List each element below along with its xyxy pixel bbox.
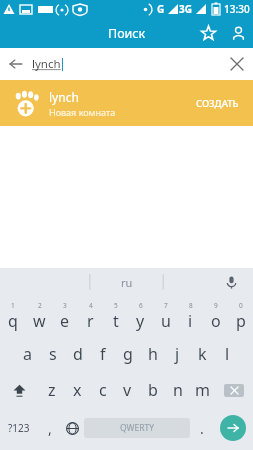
staticText: Новая комната <box>49 106 116 118</box>
button[interactable]: l <box>215 336 240 372</box>
button[interactable]: b <box>140 372 165 408</box>
staticText: d <box>73 343 83 365</box>
button[interactable]: 4 <box>78 296 103 336</box>
staticText: t <box>113 310 119 332</box>
staticText: СОЗДАТЬ <box>196 97 239 110</box>
button[interactable]: 3 <box>52 296 78 336</box>
staticText: v <box>123 379 132 401</box>
staticText: y <box>136 310 145 332</box>
staticText: h <box>148 343 158 365</box>
staticText: q <box>8 310 18 332</box>
staticText: lynch <box>32 56 61 72</box>
staticText: p <box>236 310 246 332</box>
button[interactable]: 5 <box>103 296 128 336</box>
staticText: 3 <box>63 301 67 310</box>
staticText: s <box>49 343 57 365</box>
button[interactable]: 0 <box>228 296 253 336</box>
button[interactable]: m <box>190 372 215 408</box>
staticText: e <box>60 310 70 332</box>
staticText: i <box>188 310 193 332</box>
staticText: ?123 <box>8 421 30 435</box>
button[interactable]: s <box>40 336 65 372</box>
button[interactable]: Account <box>223 18 253 48</box>
staticText: b <box>148 379 158 401</box>
staticText: f <box>100 343 106 365</box>
staticText: k <box>198 343 207 365</box>
button[interactable]: v <box>115 372 140 408</box>
button[interactable]: Change language <box>61 408 84 448</box>
button[interactable]: . <box>190 408 213 448</box>
staticText: QWERTY <box>120 422 155 434</box>
staticText: m <box>195 379 210 401</box>
staticText: 6 <box>139 301 143 310</box>
button[interactable]: k <box>190 336 215 372</box>
button[interactable]: 7 <box>153 296 178 336</box>
staticText: n <box>173 379 183 401</box>
button[interactable]: x <box>65 372 90 408</box>
button[interactable]: Shift <box>0 372 39 408</box>
button[interactable]: СОЗДАТЬ <box>182 89 253 118</box>
button[interactable]: z <box>39 372 65 408</box>
staticText: r <box>87 310 94 332</box>
staticText: 13:30 <box>224 2 250 16</box>
button[interactable]: g <box>115 336 140 372</box>
staticText: 4 <box>89 301 93 310</box>
button[interactable]: , <box>38 408 61 448</box>
button[interactable]: h <box>140 336 165 372</box>
staticText: Поиск <box>108 25 146 42</box>
staticText: x <box>73 379 82 401</box>
staticText: g <box>123 343 133 365</box>
staticText: ru <box>121 275 133 290</box>
staticText: 0 <box>239 301 243 310</box>
button[interactable]: lynch <box>0 80 253 126</box>
staticText: G <box>157 2 165 16</box>
button[interactable]: c <box>90 372 115 408</box>
button[interactable]: 9 <box>203 296 228 336</box>
staticText: 7 <box>164 301 168 310</box>
button[interactable]: Enter <box>213 408 253 448</box>
staticText: 8 <box>189 301 193 310</box>
button[interactable]: Backspace <box>215 372 253 408</box>
staticText: lynch <box>49 89 79 105</box>
button[interactable]: QWERTY <box>84 418 190 438</box>
staticText: o <box>211 310 221 332</box>
staticText: w <box>33 310 46 332</box>
staticText: 5 <box>114 301 118 310</box>
staticText: z <box>48 379 56 401</box>
button[interactable]: d <box>65 336 90 372</box>
button[interactable]: f <box>90 336 115 372</box>
button[interactable]: 6 <box>128 296 153 336</box>
button[interactable]: n <box>165 372 190 408</box>
staticText: a <box>23 343 32 365</box>
staticText: c <box>99 379 107 401</box>
staticText: . <box>200 419 204 438</box>
button[interactable]: Favorites <box>193 18 223 48</box>
button[interactable]: Voice input <box>219 270 243 294</box>
staticText: 1 <box>11 301 15 310</box>
staticText: l <box>225 343 230 365</box>
staticText: 2 <box>38 301 42 310</box>
button[interactable]: ru <box>103 271 151 294</box>
staticText: , <box>48 419 52 438</box>
staticText: j <box>175 343 180 365</box>
button[interactable]: 2 <box>26 296 52 336</box>
button[interactable]: Back <box>0 48 32 80</box>
button[interactable]: a <box>14 336 40 372</box>
staticText: 3G <box>179 2 192 16</box>
button[interactable]: 1 <box>0 296 26 336</box>
staticText: 9 <box>214 301 218 310</box>
button[interactable]: ?123 <box>0 408 38 448</box>
button[interactable]: Clear <box>221 48 253 80</box>
staticText: u <box>161 310 171 332</box>
button[interactable]: 8 <box>178 296 203 336</box>
button[interactable]: j <box>165 336 190 372</box>
